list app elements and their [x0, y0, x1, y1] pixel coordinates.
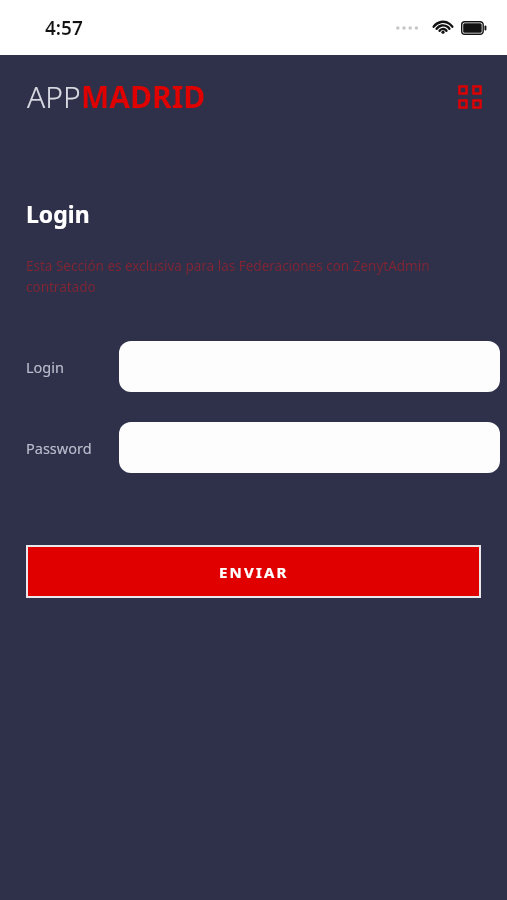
- staticText: ENVIAR: [219, 562, 289, 582]
- button[interactable]: Login field: [119, 341, 500, 392]
- staticText: Login: [26, 198, 90, 229]
- staticText: Password: [26, 438, 92, 458]
- button[interactable]: Password field: [119, 422, 500, 473]
- staticText: 4:57: [45, 15, 83, 41]
- staticText: MADRID: [81, 76, 206, 117]
- staticText: APP: [27, 76, 81, 117]
- button[interactable]: ENVIAR: [26, 545, 481, 598]
- button[interactable]: APP: [27, 76, 206, 117]
- staticText: Login: [26, 357, 64, 377]
- button[interactable]: Menu: [447, 74, 493, 120]
- staticText: Esta Sección es exclusiva para las Feder…: [26, 257, 477, 296]
